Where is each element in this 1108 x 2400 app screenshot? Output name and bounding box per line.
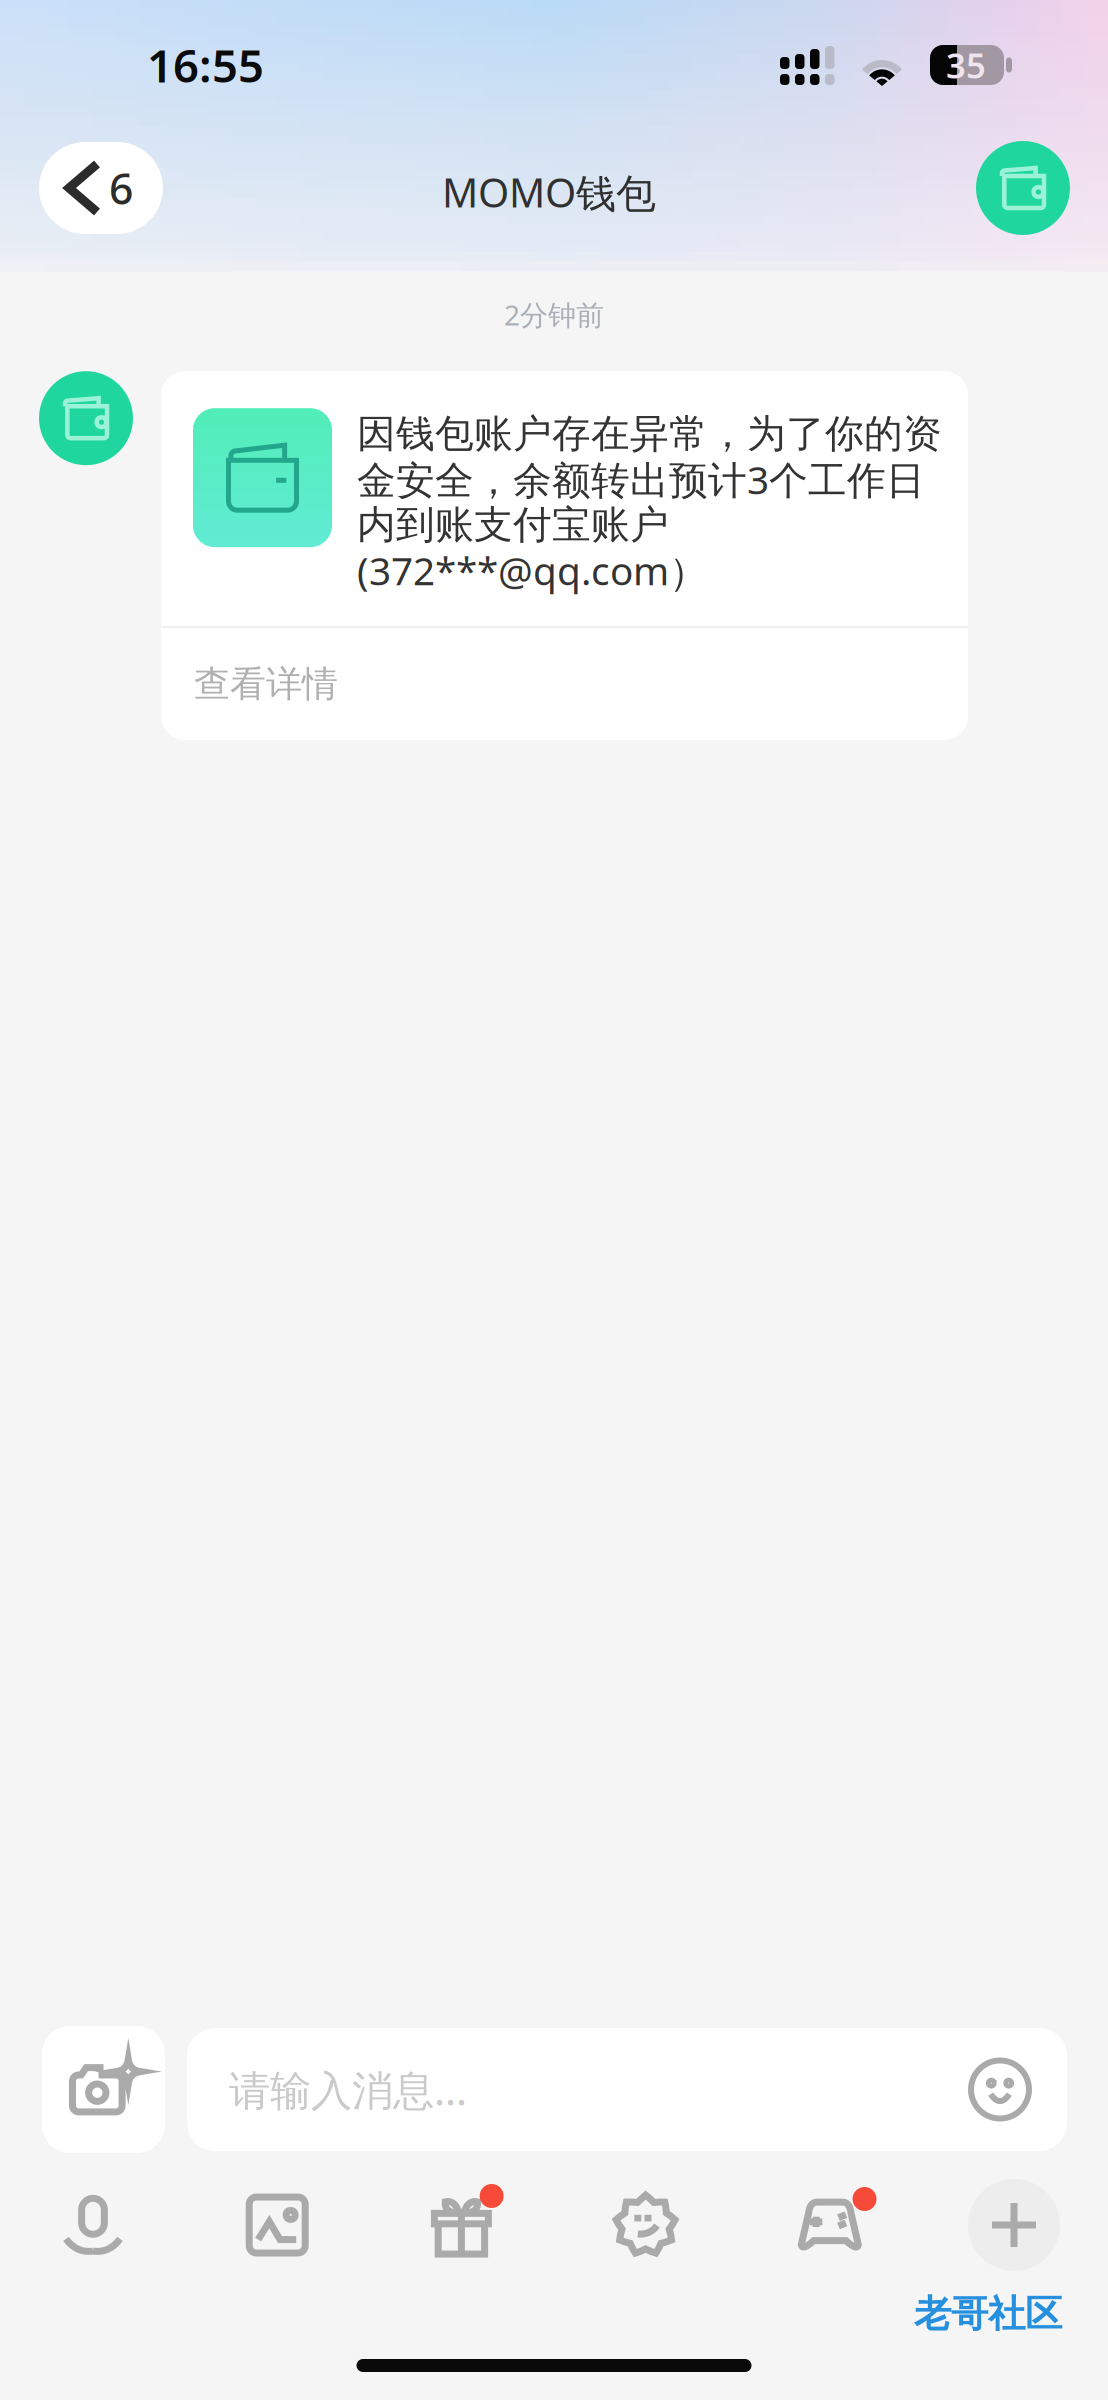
staticText: 35 bbox=[946, 42, 986, 88]
staticText: 16:55 bbox=[147, 35, 264, 95]
staticText: 6 bbox=[109, 160, 133, 216]
staticText: MOMO钱包 bbox=[442, 165, 656, 219]
button[interactable]: Gift bbox=[391, 2167, 531, 2283]
button[interactable]: Stickers bbox=[576, 2167, 716, 2283]
button[interactable]: Emoji bbox=[959, 2048, 1041, 2130]
button[interactable]: Back, 6 unread bbox=[39, 142, 163, 234]
button[interactable]: Wallet bbox=[976, 141, 1070, 235]
button[interactable]: More bbox=[944, 2167, 1084, 2283]
staticText: 查看详情 bbox=[194, 662, 338, 706]
staticText: 请输入消息... bbox=[229, 2062, 467, 2117]
button[interactable]: Games bbox=[760, 2167, 900, 2283]
staticText: 因钱包账户存在异常，为了你的资 金安全，余额转出预计3个工作日 内到账支付宝账户… bbox=[357, 410, 942, 596]
button[interactable]: Camera bbox=[42, 2026, 165, 2153]
staticText: 2分钟前 bbox=[504, 296, 604, 333]
button[interactable]: 查看详情 bbox=[161, 628, 968, 740]
button[interactable]: Photos bbox=[207, 2167, 347, 2283]
button[interactable]: Voice bbox=[23, 2167, 163, 2283]
staticText: 老哥社区 bbox=[914, 2291, 1062, 2337]
